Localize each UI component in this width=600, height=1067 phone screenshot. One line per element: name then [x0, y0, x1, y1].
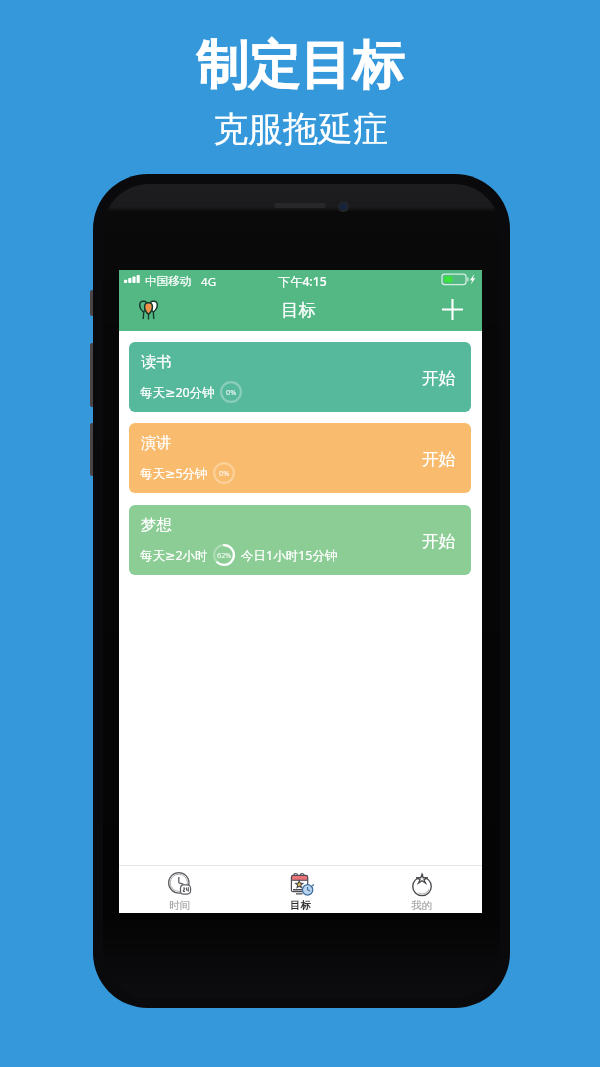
staticText: 读书: [141, 352, 172, 371]
button[interactable]: 梦想: [129, 505, 471, 575]
button[interactable]: 读书: [129, 342, 471, 412]
staticText: 开始: [422, 368, 456, 389]
staticText: 中国移动: [145, 274, 192, 289]
staticText: 制定目标: [196, 33, 404, 99]
button[interactable]: Balloons: [133, 294, 163, 324]
staticText: 62%: [217, 550, 232, 560]
staticText: 克服拖延症: [213, 107, 388, 151]
button[interactable]: 我的: [361, 865, 482, 913]
staticText: 目标: [290, 899, 311, 912]
button[interactable]: 时间: [119, 865, 240, 913]
staticText: 0%: [219, 468, 230, 478]
staticText: 每天≥20分钟: [140, 384, 215, 401]
staticText: 今日1小时15分钟: [241, 547, 338, 564]
button[interactable]: 演讲: [129, 423, 471, 493]
staticText: 梦想: [141, 515, 172, 534]
staticText: 下午4:15: [278, 273, 327, 290]
staticText: 开始: [422, 449, 456, 470]
button[interactable]: 目标: [240, 865, 361, 913]
staticText: 时间: [169, 899, 190, 912]
staticText: 每天≥5分钟: [140, 465, 208, 482]
staticText: 0%: [226, 387, 237, 397]
button[interactable]: Add goal: [437, 294, 467, 324]
staticText: 每天≥2小时: [140, 547, 208, 564]
staticText: 开始: [422, 531, 456, 552]
staticText: 我的: [411, 899, 432, 912]
staticText: 目标: [281, 299, 316, 321]
staticText: 4G: [201, 274, 217, 290]
staticText: 演讲: [141, 433, 172, 452]
